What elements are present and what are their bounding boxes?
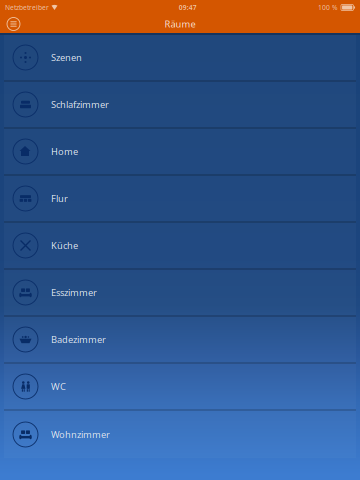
staticText: WC bbox=[51, 380, 66, 393]
staticText: 09:47 bbox=[179, 3, 197, 12]
staticText: Wohnzimmer bbox=[51, 428, 110, 441]
button[interactable]: Szenen bbox=[4, 35, 356, 82]
staticText: Netzbetreiber bbox=[5, 3, 49, 12]
staticText: Szenen bbox=[51, 51, 82, 64]
staticText: Esszimmer bbox=[51, 286, 97, 299]
staticText: Räume bbox=[164, 18, 195, 30]
button[interactable]: Esszimmer bbox=[4, 270, 356, 317]
button[interactable]: Küche bbox=[4, 223, 356, 270]
button[interactable]: Schlafzimmer bbox=[4, 82, 356, 129]
button[interactable]: WC bbox=[4, 364, 356, 411]
staticText: 100 % bbox=[318, 3, 338, 12]
button[interactable]: Menu bbox=[0, 15, 27, 32]
button[interactable]: Flur bbox=[4, 176, 356, 223]
staticText: Badezimmer bbox=[51, 333, 106, 346]
button[interactable]: Badezimmer bbox=[4, 317, 356, 364]
button[interactable]: Wohnzimmer bbox=[4, 411, 356, 458]
staticText: Flur bbox=[51, 192, 68, 205]
button[interactable]: Home bbox=[4, 129, 356, 176]
staticText: Schlafzimmer bbox=[51, 98, 109, 111]
staticText: Küche bbox=[51, 239, 78, 252]
staticText: Home bbox=[51, 145, 78, 158]
